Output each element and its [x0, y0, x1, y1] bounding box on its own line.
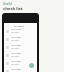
- staticText: sub text: [11, 47, 19, 50]
- staticText: sub text: [11, 31, 19, 34]
- staticText: Task item: [11, 52, 22, 55]
- staticText: sub text: [11, 63, 19, 66]
- button[interactable]: Task item: [4, 43, 37, 51]
- staticText: sub text: [11, 39, 19, 42]
- button[interactable]: Task item: [4, 35, 37, 43]
- staticText: Task item: [11, 68, 22, 71]
- button[interactable]: Task item: [4, 67, 37, 72]
- staticText: sub text: [11, 55, 19, 58]
- button[interactable]: Task item: [4, 27, 37, 35]
- button[interactable]: Task item: [4, 59, 37, 67]
- staticText: My tasks: [14, 24, 25, 27]
- staticText: Task item: [11, 60, 22, 63]
- button[interactable]: Add item: [29, 63, 34, 68]
- staticText: Task item: [11, 44, 22, 47]
- staticText: check list: [3, 6, 23, 12]
- staticText: Task item: [11, 36, 22, 39]
- staticText: Task item: [11, 28, 22, 31]
- button[interactable]: Task item: [4, 51, 37, 59]
- staticText: Useful: [3, 2, 13, 6]
